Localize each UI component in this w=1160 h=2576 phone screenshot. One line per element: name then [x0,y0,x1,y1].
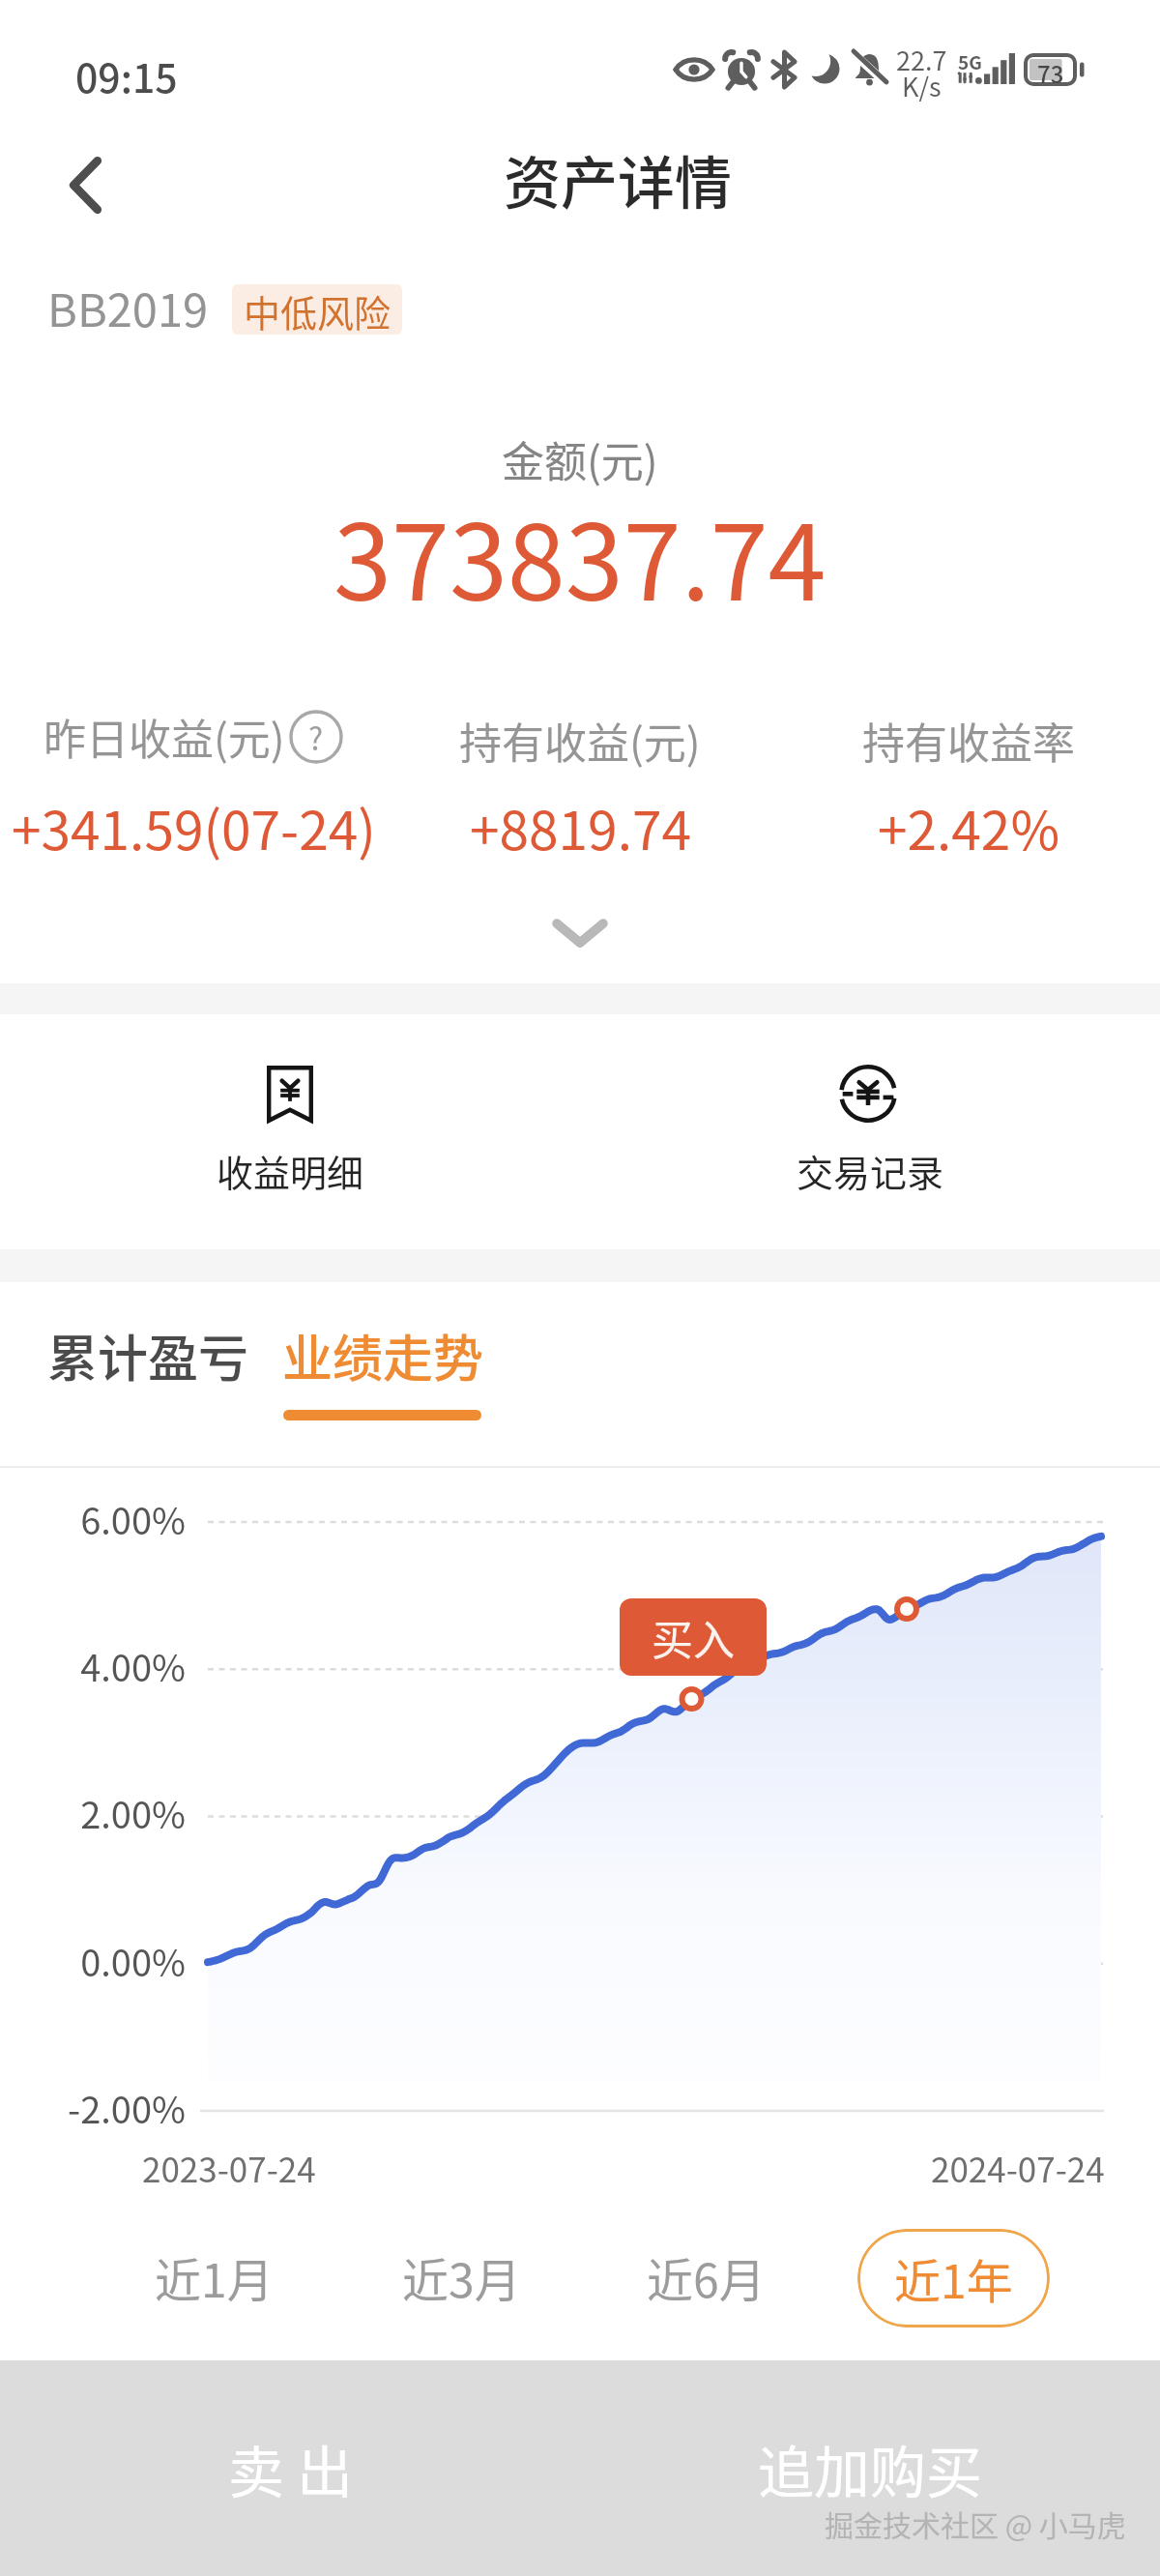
staticText: 2023-07-24 [142,2143,316,2192]
staticText: BB2019 [47,274,209,339]
button[interactable]: 买入 [620,1598,767,1676]
staticText: 买入 [652,1607,735,1667]
staticText: 持有收益率 [862,710,1075,772]
staticText: 收益明细 [217,1144,364,1197]
staticText: +341.59(07-24) [12,788,376,865]
staticText: 掘金技术社区 @ 小马虎 [825,2503,1126,2544]
button[interactable] [580,1014,1160,1249]
button[interactable] [0,1014,580,1249]
staticText: 373837.74 [333,480,826,630]
staticText: ? [308,715,324,759]
staticText: 中低风险 [244,284,391,335]
staticText: 资产详情 [504,138,733,220]
button[interactable]: 卖 出 [0,2360,580,2576]
staticText: 73 [1037,56,1064,90]
staticText: 近1月 [155,2243,274,2311]
button[interactable]: 近1年 [857,2229,1050,2327]
staticText: 2024-07-24 [931,2143,1105,2192]
staticText: 09:15 [75,46,178,103]
staticText: 近1年 [894,2244,1013,2312]
staticText: 5G [958,48,982,75]
staticText: 6.00% [80,1492,186,1545]
button[interactable]: Expand details [0,887,1160,980]
staticText: +2.42% [878,788,1060,865]
button[interactable]: 业绩走势 [269,1309,498,1401]
staticText: -2.00% [67,2081,186,2134]
button[interactable]: 累计盈亏 [34,1309,263,1401]
staticText: 近3月 [402,2243,521,2311]
staticText: 昨日收益(元) [43,706,285,768]
staticText: 交易记录 [797,1144,944,1197]
staticText: 0.00% [80,1934,186,1987]
button[interactable]: Back [31,130,139,240]
staticText: 近6月 [647,2243,766,2311]
staticText: 追加购买 [758,2428,983,2509]
staticText: 2.00% [80,1786,186,1839]
staticText: 持有收益(元) [459,710,701,772]
staticText: 金额(元) [502,428,658,490]
button[interactable]: 近1月 [127,2228,301,2327]
staticText: 业绩走势 [282,1319,484,1391]
staticText: 22.7 [896,41,947,78]
staticText: K/s [902,67,942,104]
button[interactable]: Help [289,710,343,764]
staticText: 卖 出 [228,2428,353,2509]
staticText: 累计盈亏 [47,1319,249,1391]
staticText: 4.00% [80,1639,186,1692]
button[interactable]: 近3月 [374,2228,548,2327]
button[interactable]: 近6月 [619,2228,793,2327]
button[interactable]: 追加购买 [580,2360,1160,2576]
staticText: +8819.74 [470,788,691,865]
